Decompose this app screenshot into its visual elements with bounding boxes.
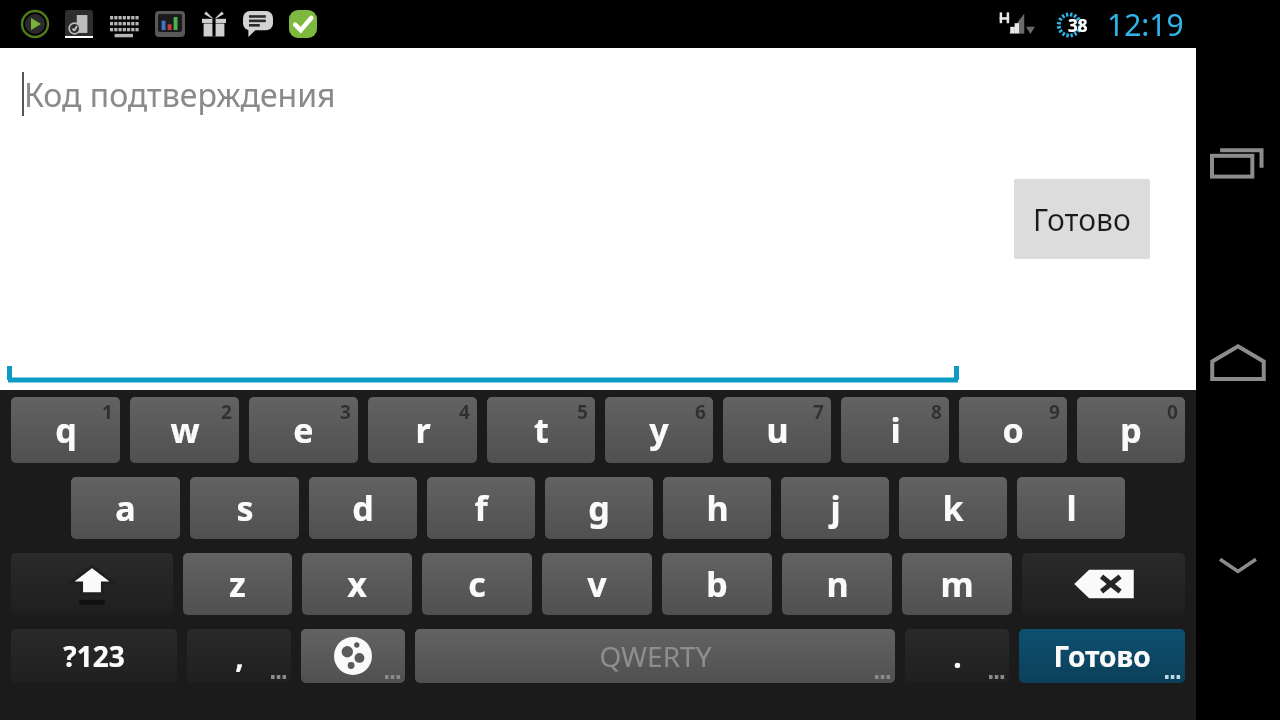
staticText: 3 xyxy=(340,399,351,425)
button[interactable]: Backspace xyxy=(1022,553,1185,615)
staticText: 6 xyxy=(695,399,706,425)
button[interactable]: l xyxy=(1017,477,1125,539)
button[interactable]: u xyxy=(723,397,831,463)
staticText: v xyxy=(587,561,607,607)
staticText: x xyxy=(347,561,367,607)
staticText: n xyxy=(826,561,849,607)
button[interactable]: d xyxy=(309,477,417,539)
button[interactable]: x xyxy=(302,553,412,615)
button[interactable]: h xyxy=(663,477,771,539)
staticText: m xyxy=(940,561,974,607)
button[interactable]: QWERTY xyxy=(415,629,895,683)
button[interactable]: . xyxy=(905,629,1009,683)
button[interactable]: Change language xyxy=(301,629,405,683)
staticText: 38 xyxy=(1068,14,1088,37)
staticText: Готово xyxy=(1053,637,1151,675)
staticText: f xyxy=(474,485,488,531)
button[interactable]: g xyxy=(545,477,653,539)
button[interactable]: Recent apps xyxy=(1196,128,1280,198)
staticText: 0 xyxy=(1167,399,1178,425)
staticText: c xyxy=(468,561,486,607)
staticText: 4 xyxy=(459,399,470,425)
button[interactable]: i xyxy=(841,397,949,463)
staticText: j xyxy=(830,485,841,531)
staticText: 9 xyxy=(1049,399,1060,425)
button[interactable]: t xyxy=(487,397,595,463)
button[interactable]: j xyxy=(781,477,889,539)
staticText: 12:19 xyxy=(1107,4,1184,45)
button[interactable]: f xyxy=(427,477,535,539)
staticText: e xyxy=(293,407,314,453)
staticText: z xyxy=(229,561,246,607)
staticText: . xyxy=(953,636,962,677)
button[interactable]: p xyxy=(1077,397,1185,463)
staticText: l xyxy=(1066,485,1077,531)
button[interactable]: Hide keyboard xyxy=(1196,535,1280,595)
button[interactable]: Shift xyxy=(11,553,173,615)
staticText: s xyxy=(236,485,254,531)
button[interactable]: v xyxy=(542,553,652,615)
staticText: y xyxy=(649,407,669,453)
staticText: q xyxy=(55,407,77,453)
button[interactable]: q xyxy=(11,397,120,463)
button[interactable]: o xyxy=(959,397,1067,463)
staticText: 2 xyxy=(221,399,232,425)
button[interactable]: y xyxy=(605,397,713,463)
staticText: p xyxy=(1120,407,1142,453)
staticText: u xyxy=(766,407,789,453)
button[interactable]: s xyxy=(190,477,299,539)
staticText: o xyxy=(1002,407,1024,453)
staticText: 8 xyxy=(931,399,942,425)
button[interactable]: k xyxy=(899,477,1007,539)
button[interactable]: n xyxy=(782,553,892,615)
staticText: QWERTY xyxy=(599,637,712,675)
staticText: w xyxy=(170,407,200,453)
staticText: t xyxy=(534,407,549,453)
staticText: a xyxy=(115,485,136,531)
staticText: k xyxy=(942,485,964,531)
button[interactable]: c xyxy=(422,553,532,615)
button[interactable]: Готово xyxy=(1014,179,1150,259)
staticText: d xyxy=(352,485,374,531)
button[interactable]: ?123 xyxy=(11,629,177,683)
button[interactable]: z xyxy=(183,553,292,615)
button[interactable]: b xyxy=(662,553,772,615)
button[interactable]: a xyxy=(71,477,180,539)
staticText: Готово xyxy=(1033,199,1131,240)
staticText: h xyxy=(706,485,729,531)
button[interactable]: m xyxy=(902,553,1012,615)
button[interactable]: , xyxy=(187,629,291,683)
button[interactable]: Home xyxy=(1196,328,1280,398)
staticText: r xyxy=(415,407,431,453)
button[interactable]: Готово xyxy=(1019,629,1185,683)
staticText: , xyxy=(235,636,244,677)
staticText: i xyxy=(890,407,901,453)
button[interactable]: w xyxy=(130,397,239,463)
button[interactable]: e xyxy=(249,397,358,463)
button[interactable]: r xyxy=(368,397,477,463)
staticText: Код подтверждения xyxy=(24,73,336,117)
staticText: ?123 xyxy=(63,637,125,675)
staticText: g xyxy=(588,485,610,531)
staticText: b xyxy=(706,561,728,607)
staticText: 1 xyxy=(102,399,113,425)
staticText: 7 xyxy=(813,399,824,425)
staticText: 5 xyxy=(577,399,588,425)
